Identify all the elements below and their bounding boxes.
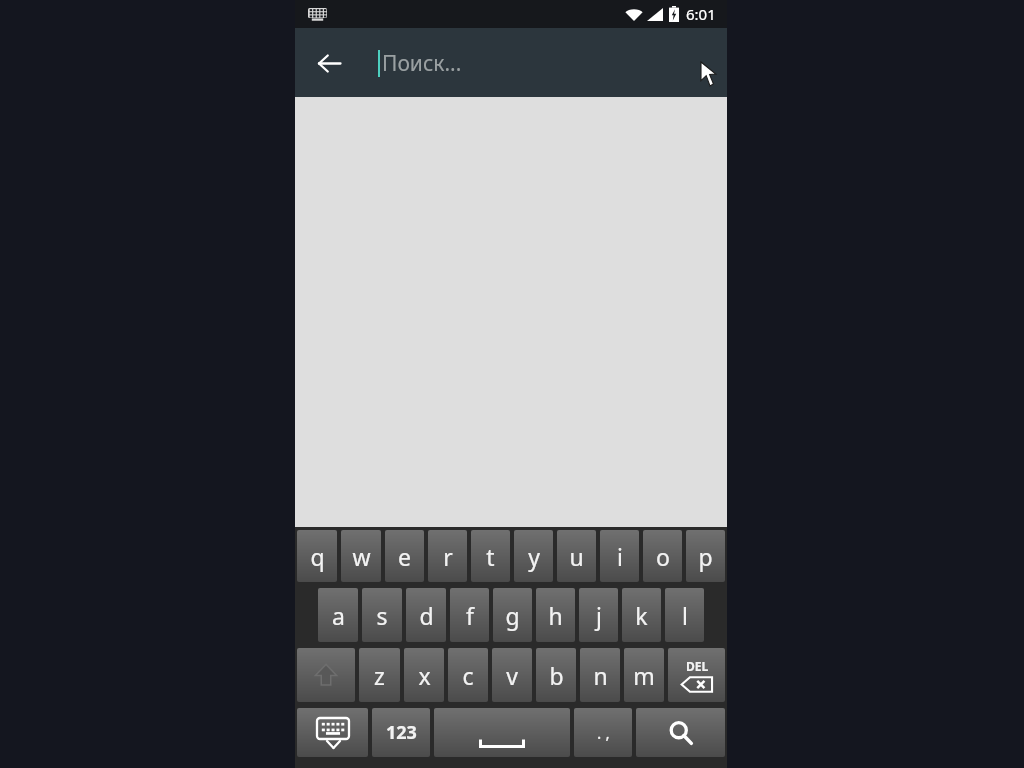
staticText: b (549, 660, 564, 691)
staticText: a (332, 600, 345, 631)
button[interactable]: r (428, 530, 467, 582)
button[interactable]: a (318, 588, 358, 642)
button[interactable]: 123 (372, 708, 430, 757)
button[interactable]: k (622, 588, 661, 642)
button[interactable]: Space (434, 708, 570, 757)
staticText: i (617, 541, 623, 572)
button[interactable]: Search (636, 708, 725, 757)
staticText: y (528, 541, 540, 572)
staticText: t (486, 541, 495, 572)
staticText: . , (597, 722, 610, 744)
staticText: q (310, 541, 325, 572)
button[interactable]: e (385, 530, 424, 582)
button[interactable]: l (665, 588, 704, 642)
button[interactable]: h (536, 588, 575, 642)
staticText: s (376, 600, 388, 631)
button[interactable]: Shift (297, 648, 355, 702)
staticText: h (548, 600, 563, 631)
staticText: v (506, 660, 518, 691)
staticText: m (633, 660, 655, 691)
button[interactable]: x (404, 648, 444, 702)
button[interactable]: Поиск... (378, 40, 462, 86)
staticText: p (698, 541, 713, 572)
button[interactable]: s (362, 588, 402, 642)
button[interactable]: t (471, 530, 510, 582)
button[interactable]: i (600, 530, 639, 582)
button[interactable]: Delete (668, 648, 725, 702)
staticText: 6:01 (686, 4, 716, 24)
staticText: j (596, 600, 602, 631)
button[interactable]: o (643, 530, 682, 582)
button[interactable]: f (450, 588, 489, 642)
staticText: u (569, 541, 584, 572)
staticText: l (682, 600, 688, 631)
staticText: x (418, 660, 431, 691)
staticText: Поиск... (382, 49, 462, 78)
button[interactable]: q (297, 530, 337, 582)
staticText: k (635, 600, 648, 631)
button[interactable]: j (579, 588, 618, 642)
button[interactable]: d (406, 588, 446, 642)
staticText: z (374, 660, 385, 691)
button[interactable]: n (580, 648, 620, 702)
button[interactable]: p (686, 530, 725, 582)
staticText: w (352, 541, 371, 572)
staticText: r (443, 541, 453, 572)
staticText: 123 (386, 720, 417, 745)
button[interactable]: z (359, 648, 400, 702)
button[interactable]: b (536, 648, 576, 702)
staticText: d (419, 600, 434, 631)
button[interactable]: v (492, 648, 532, 702)
staticText: DEL (686, 658, 709, 674)
button[interactable]: y (514, 530, 553, 582)
button[interactable]: u (557, 530, 596, 582)
button[interactable]: w (341, 530, 381, 582)
staticText: c (462, 660, 474, 691)
staticText: o (656, 541, 670, 572)
button[interactable]: . , (574, 708, 632, 757)
button[interactable]: m (624, 648, 664, 702)
staticText: g (505, 600, 520, 631)
staticText: n (593, 660, 608, 691)
button[interactable]: Hide keyboard (297, 708, 368, 757)
button[interactable]: Back (305, 39, 353, 87)
staticText: f (466, 600, 474, 631)
button[interactable]: c (448, 648, 488, 702)
button[interactable]: g (493, 588, 532, 642)
staticText: e (398, 541, 411, 572)
